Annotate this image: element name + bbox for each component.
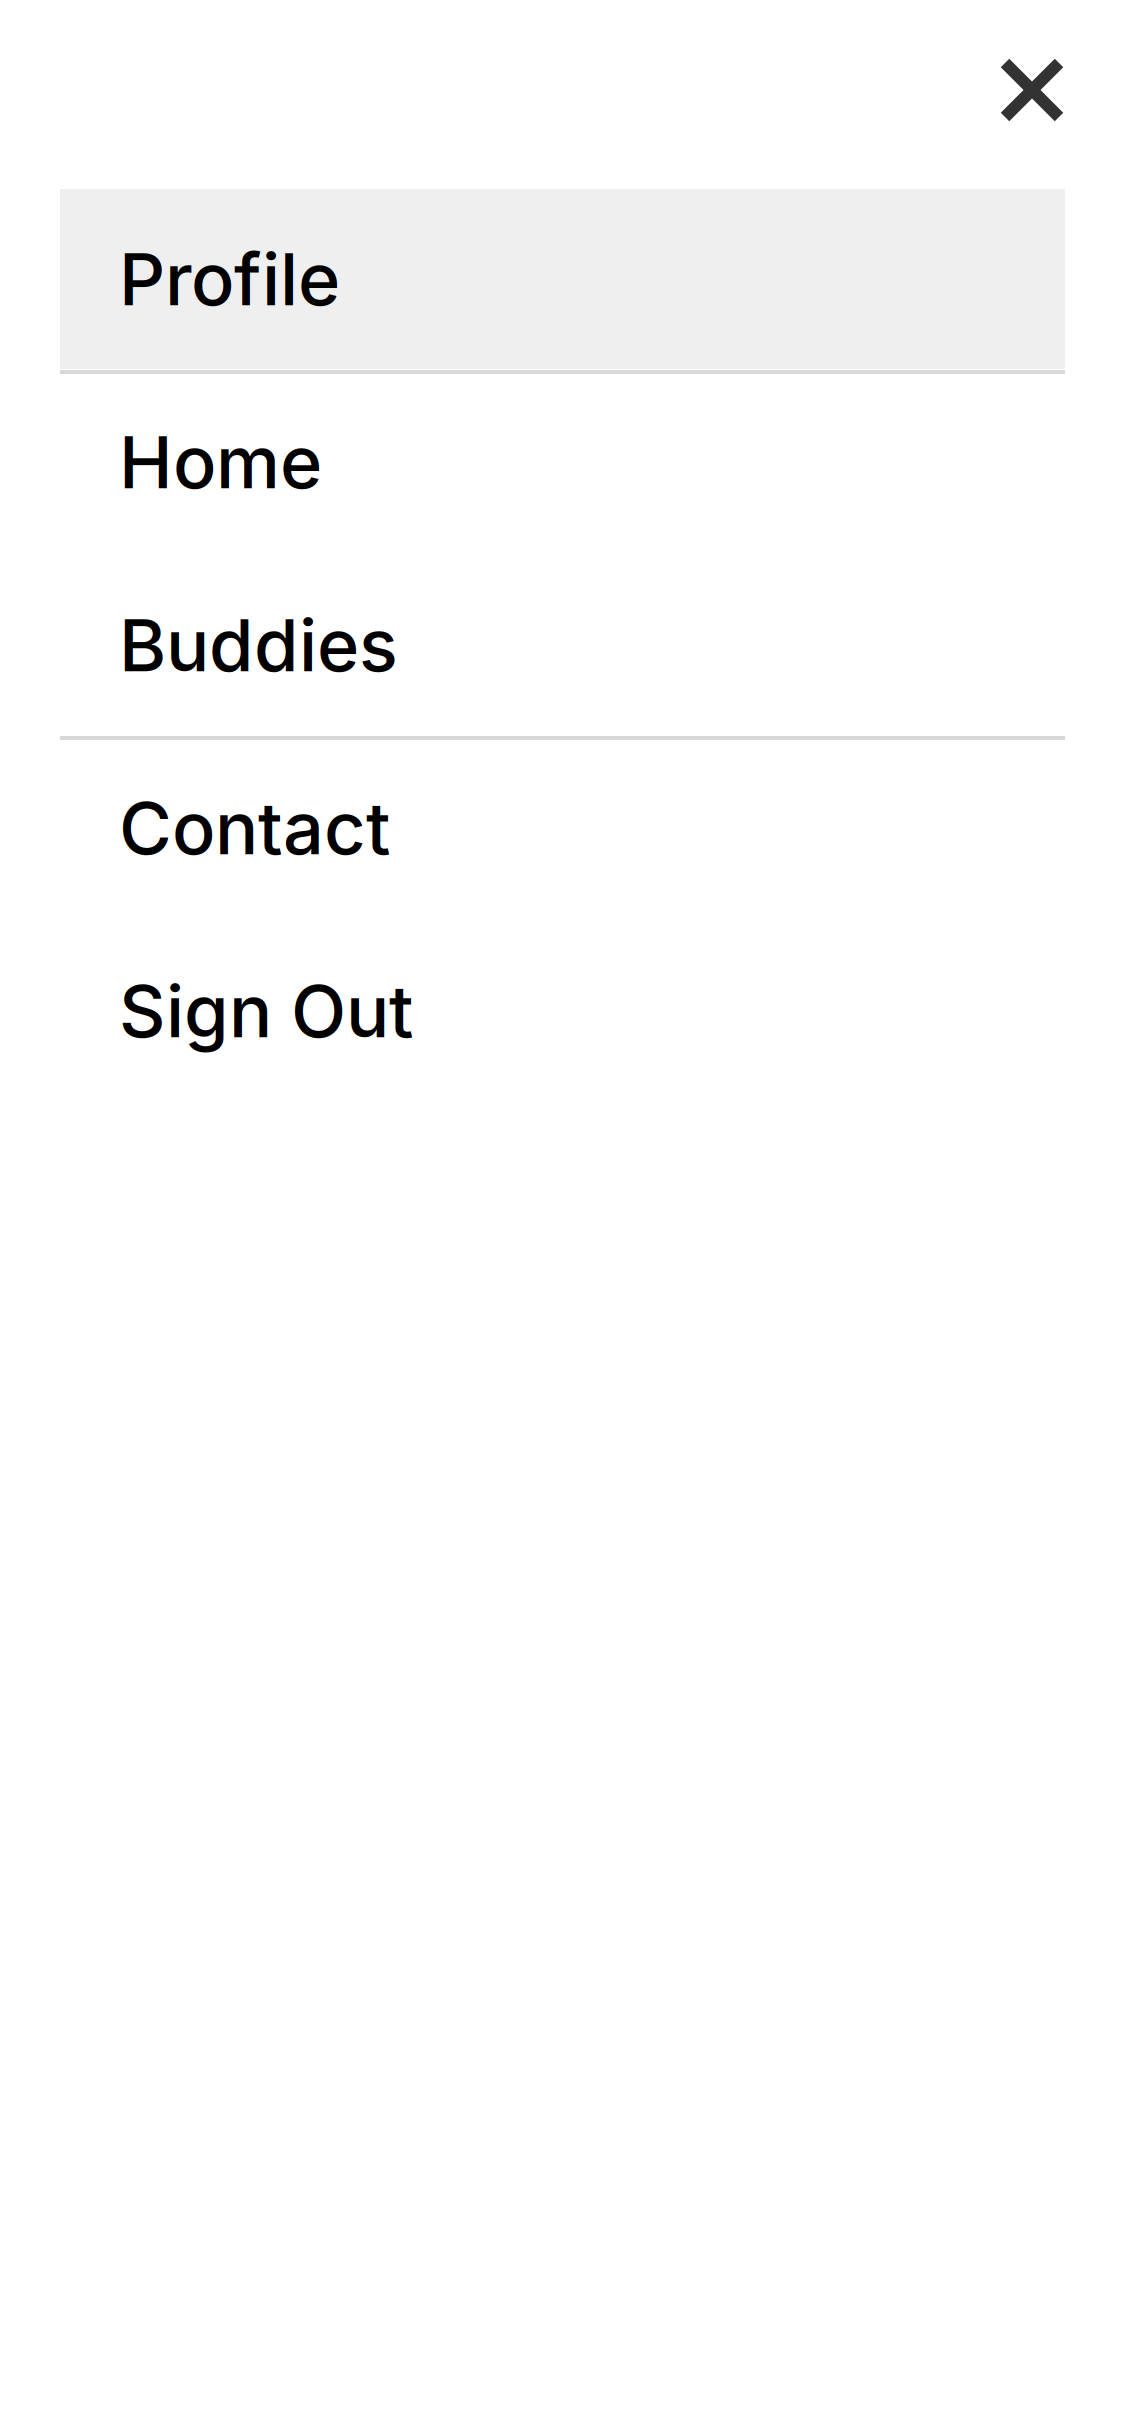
- button[interactable]: Sign Out: [0, 921, 1125, 1104]
- staticText: Sign Out: [119, 967, 414, 1054]
- staticText: Home: [119, 418, 322, 505]
- button[interactable]: Home: [0, 372, 1125, 555]
- button[interactable]: Close: [974, 32, 1090, 148]
- staticText: Profile: [119, 235, 340, 322]
- staticText: Buddies: [119, 601, 398, 688]
- button[interactable]: Buddies: [0, 555, 1125, 738]
- button[interactable]: Profile: [0, 189, 1125, 372]
- button[interactable]: Contact: [0, 738, 1125, 921]
- staticText: Contact: [119, 784, 391, 871]
